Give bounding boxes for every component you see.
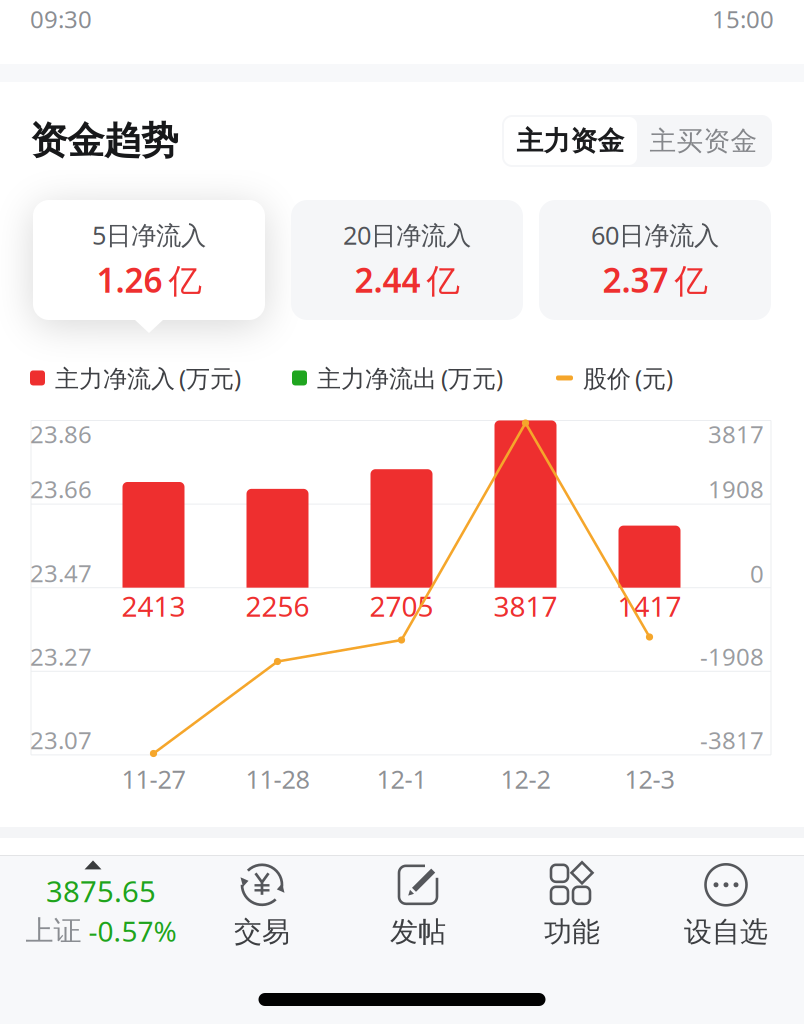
staticText: 主力净流出 (万元) [317,362,503,394]
staticText: 功能 [544,915,600,949]
staticText: 1908 [708,473,764,505]
staticText: 资金趋势 [30,118,178,164]
staticText: 股价 (元) [583,362,673,394]
button[interactable]: 20日净流入 [291,200,523,320]
button[interactable]: 60日净流入 [539,200,771,320]
staticText: 23.66 [30,473,92,505]
staticText: 12-1 [376,762,426,796]
staticText: 2705 [369,587,433,625]
staticText: 12-2 [500,762,550,796]
button[interactable]: 设自选 [661,857,791,953]
button[interactable]: 5日净流入 [33,200,265,320]
staticText: 3875.65 [46,871,156,910]
staticText: 2.44 亿 [354,258,459,302]
button[interactable]: 3875.65 [1,855,201,955]
staticText: 主力净流入 (万元) [55,362,241,394]
button[interactable]: 主买资金 [637,117,770,165]
staticText: 1.26 亿 [96,258,201,302]
staticText: 2413 [121,587,185,625]
staticText: 0 [750,558,764,589]
staticText: 交易 [234,915,290,949]
staticText: 3817 [493,587,557,625]
staticText: 23.86 [30,418,92,450]
staticText: 23.27 [30,641,92,672]
staticText: 20日净流入 [343,218,471,252]
staticText: 5日净流入 [92,218,206,252]
staticText: 2256 [245,587,309,625]
staticText: 09:30 [30,3,92,35]
staticText: 主买资金 [649,125,757,157]
staticText: 1417 [617,587,681,625]
button[interactable]: 交易 [197,857,327,953]
staticText: 60日净流入 [591,218,719,252]
button[interactable]: 功能 [507,857,637,953]
staticText: 设自选 [684,915,768,949]
staticText: -0.57% [88,912,176,950]
staticText: 上证 [25,914,81,948]
staticText: 发帖 [390,915,446,949]
staticText: 2.37 亿 [602,258,707,302]
staticText: 12-3 [624,762,674,796]
staticText: -3817 [700,724,764,756]
button[interactable]: 主力资金 [504,117,637,165]
button[interactable]: 发帖 [353,857,483,953]
staticText: 23.07 [30,724,92,756]
staticText: -1908 [700,641,764,672]
staticText: 23.47 [30,557,92,589]
staticText: 主力资金 [516,125,624,157]
staticText: 3817 [708,418,764,450]
staticText: 15:00 [712,3,774,35]
staticText: 11-28 [245,762,309,796]
staticText: 11-27 [121,762,185,796]
